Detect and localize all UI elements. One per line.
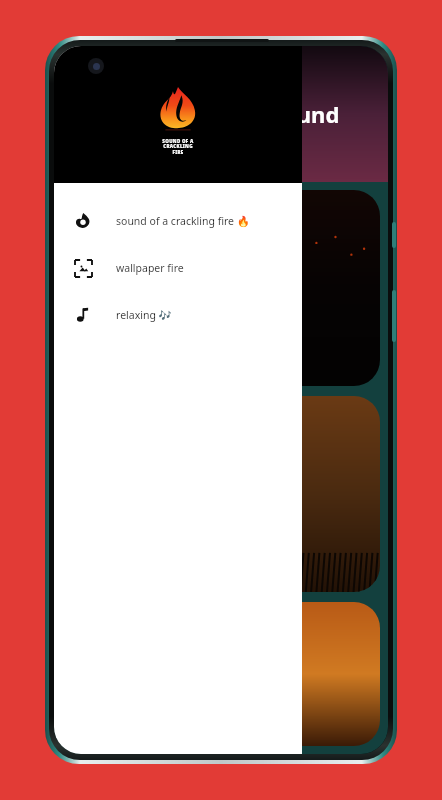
button[interactable] [62, 602, 380, 746]
button[interactable] [62, 190, 380, 386]
button[interactable]: Wallpaper [54, 244, 302, 291]
staticText: wallpaper fire [116, 261, 184, 275]
button[interactable]: Fire sounds [54, 197, 302, 244]
button[interactable]: Relaxing music [54, 291, 302, 338]
other: Relaxing music [75, 307, 91, 323]
staticText: SOUND OF A CRACKLING FIRE [162, 138, 194, 156]
other: Fire sounds [75, 213, 91, 229]
staticText: sound of a crackling fire 🔥 [116, 214, 250, 228]
button[interactable] [62, 396, 380, 592]
other: Wallpaper [75, 260, 92, 277]
staticText: Fire Sound [224, 99, 340, 129]
staticText: relaxing 🎶 [116, 308, 172, 322]
